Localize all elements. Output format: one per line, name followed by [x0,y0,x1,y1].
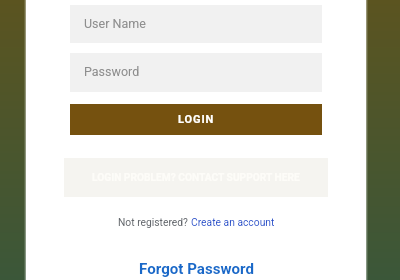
staticText: LOGIN PROBLEM? CONTACT SUPPORT HERE [92,172,300,184]
button[interactable]: User Name [70,5,322,43]
staticText: Create an account [191,216,275,228]
staticText: Forgot Password [139,260,254,278]
button[interactable]: Create an account [191,216,275,228]
button[interactable]: Password [70,53,322,92]
staticText: Password [84,64,140,79]
button[interactable]: LOGIN [70,104,322,135]
staticText: LOGIN [178,113,215,126]
button[interactable]: Forgot Password [26,260,366,278]
staticText: Not registered? [118,216,191,228]
staticText: User Name [84,16,146,31]
